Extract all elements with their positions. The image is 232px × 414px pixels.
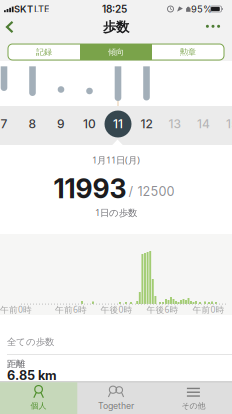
staticText: 11993 (53, 172, 126, 205)
staticText: 午後0時 (100, 304, 132, 315)
staticText: 95% (191, 3, 212, 15)
staticText: 午前0時 (192, 304, 224, 315)
button[interactable]: 1月7日 (0, 109, 17, 139)
staticText: 全ての歩数 (7, 336, 54, 348)
button[interactable]: 記録 (8, 44, 80, 60)
button[interactable]: 個人 (0, 382, 77, 414)
staticText: 1日の歩数 (95, 206, 137, 219)
button[interactable]: Together (77, 382, 154, 414)
button[interactable]: 1月10日 (76, 109, 102, 139)
button[interactable]: 1月11日 (105, 109, 131, 139)
button[interactable]: Back (0, 20, 20, 34)
staticText: 傾向 (108, 47, 124, 57)
button[interactable]: More (203, 20, 223, 32)
button[interactable]: その他 (155, 382, 232, 414)
button[interactable]: 1月14日 (190, 109, 216, 139)
staticText: 18:25 (102, 3, 127, 15)
staticText: 11 (113, 117, 123, 131)
button[interactable]: 傾向 (80, 44, 152, 60)
staticText: 午後6時 (146, 304, 178, 315)
button[interactable]: 1月13日 (162, 109, 188, 139)
staticText: LTE (34, 3, 50, 15)
staticText: 10 (83, 117, 96, 131)
staticText: その他 (181, 401, 205, 411)
staticText: 個人 (31, 401, 47, 411)
staticText: 14 (197, 117, 210, 131)
staticText: 15 (226, 117, 232, 131)
staticText: 13 (168, 117, 181, 131)
staticText: 8 (28, 117, 36, 131)
button[interactable]: 1月15日 (219, 109, 232, 139)
staticText: 午前0時 (0, 304, 32, 315)
button[interactable]: 1月12日 (133, 109, 159, 139)
button[interactable]: 勲章 (152, 44, 224, 60)
staticText: 6.85 km (7, 368, 57, 383)
staticText: SKT (14, 3, 33, 15)
staticText: Together (98, 401, 134, 411)
staticText: 7 (0, 117, 7, 131)
staticText: 午前6時 (55, 304, 87, 315)
button[interactable]: 距離 (0, 355, 232, 381)
staticText: 記録 (36, 47, 52, 57)
staticText: 1月11日(月) (92, 154, 140, 166)
button[interactable]: 1月8日 (19, 109, 45, 139)
staticText: / 12500 (128, 184, 174, 199)
button[interactable]: 1月9日 (48, 109, 74, 139)
staticText: 歩数 (103, 19, 129, 35)
staticText: 勲章 (180, 47, 196, 57)
staticText: 9 (57, 117, 65, 131)
staticText: 12 (140, 117, 152, 131)
staticText: 距離 (7, 358, 25, 370)
